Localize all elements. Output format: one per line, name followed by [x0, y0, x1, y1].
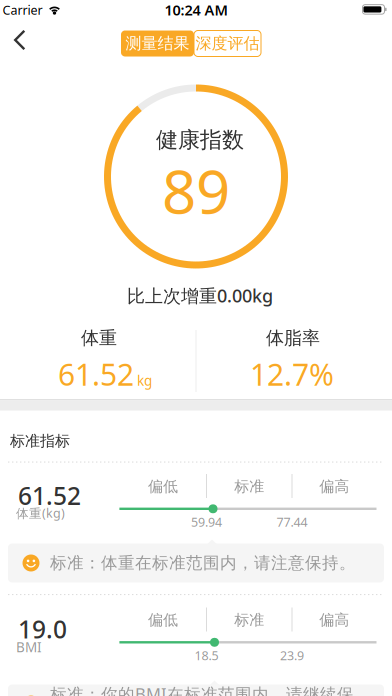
staticText: 89: [162, 151, 230, 230]
staticText: 19.0: [18, 613, 67, 645]
staticText: 偏高: [319, 611, 349, 629]
staticText: 健康指数: [156, 126, 244, 153]
staticText: 59.94: [191, 514, 222, 530]
staticText: kg: [137, 371, 152, 389]
staticText: 偏低: [148, 611, 178, 629]
button[interactable]: 测量结果: [121, 30, 194, 56]
staticText: 10:24 AM: [164, 0, 227, 19]
staticText: 标准：你的BMI在标准范围内，请继续保持健康的: [50, 683, 354, 696]
staticText: 23.9: [280, 647, 304, 664]
staticText: 偏低: [148, 477, 178, 496]
staticText: 标准指标: [10, 432, 70, 450]
staticText: 标准：体重在标准范围内，请注意保持。: [50, 553, 356, 573]
staticText: BMI: [16, 638, 42, 656]
staticText: 77.44: [276, 514, 307, 530]
staticText: Carrier: [2, 1, 42, 18]
staticText: 深度评估: [195, 34, 259, 53]
staticText: 比上次增重0.00kg: [127, 283, 273, 307]
staticText: 体脂率: [266, 327, 320, 349]
staticText: 体重: [81, 327, 117, 349]
staticText: 18.5: [194, 647, 218, 664]
staticText: 偏高: [319, 477, 349, 496]
staticText: 61.52: [58, 354, 134, 394]
staticText: 标准: [234, 611, 264, 629]
staticText: 标准: [234, 477, 264, 496]
staticText: 61.52: [18, 479, 81, 512]
button[interactable]: Back: [0, 24, 44, 56]
button[interactable]: 深度评估: [194, 30, 261, 56]
staticText: 测量结果: [125, 34, 189, 53]
staticText: 12.7%: [250, 354, 334, 394]
staticText: 体重(kg): [16, 505, 65, 521]
